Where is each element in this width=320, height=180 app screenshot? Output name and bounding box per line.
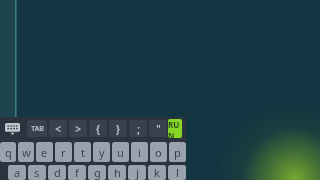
button[interactable]: s bbox=[28, 165, 46, 180]
staticText: u bbox=[117, 145, 124, 160]
button[interactable]: g bbox=[88, 165, 106, 180]
staticText: w bbox=[22, 145, 31, 160]
button[interactable]: < bbox=[49, 120, 67, 137]
staticText: g bbox=[94, 165, 101, 180]
staticText: < bbox=[55, 122, 61, 136]
button[interactable]: l bbox=[168, 165, 186, 180]
button[interactable]: { bbox=[89, 120, 107, 137]
button[interactable]: r bbox=[55, 142, 72, 162]
staticText: l bbox=[176, 165, 179, 180]
staticText: k bbox=[154, 165, 160, 180]
staticText: q bbox=[5, 145, 12, 160]
button[interactable]: > bbox=[69, 120, 87, 137]
button[interactable]: u bbox=[112, 142, 129, 162]
staticText: j bbox=[136, 165, 139, 180]
staticText: o bbox=[155, 145, 162, 160]
button[interactable]: p bbox=[169, 142, 186, 162]
staticText: d bbox=[54, 165, 61, 180]
staticText: " bbox=[156, 122, 161, 136]
button[interactable]: j bbox=[128, 165, 146, 180]
button[interactable]: ; bbox=[129, 120, 147, 137]
button[interactable]: t bbox=[74, 142, 91, 162]
button[interactable]: " bbox=[149, 120, 167, 137]
staticText: f bbox=[75, 165, 79, 180]
button[interactable]: i bbox=[131, 142, 148, 162]
staticText: TAB bbox=[31, 124, 44, 134]
staticText: r bbox=[61, 145, 66, 160]
staticText: y bbox=[99, 145, 105, 160]
button[interactable]: TAB bbox=[27, 120, 47, 137]
button[interactable]: Hide keyboard bbox=[3, 120, 22, 137]
staticText: RUN bbox=[168, 119, 182, 138]
staticText: e bbox=[41, 145, 48, 160]
button[interactable]: } bbox=[109, 120, 127, 137]
button[interactable]: RUN bbox=[168, 119, 182, 138]
staticText: h bbox=[114, 165, 121, 180]
button[interactable]: q bbox=[0, 142, 16, 162]
button[interactable]: y bbox=[93, 142, 110, 162]
button[interactable]: d bbox=[48, 165, 66, 180]
button[interactable]: e bbox=[36, 142, 53, 162]
staticText: { bbox=[96, 122, 100, 136]
staticText: ; bbox=[137, 122, 140, 136]
button[interactable]: a bbox=[8, 165, 26, 180]
button[interactable]: k bbox=[148, 165, 166, 180]
staticText: > bbox=[75, 122, 81, 136]
button[interactable]: h bbox=[108, 165, 126, 180]
staticText: i bbox=[138, 145, 141, 160]
staticText: p bbox=[174, 145, 181, 160]
button[interactable]: f bbox=[68, 165, 86, 180]
staticText: a bbox=[14, 165, 21, 180]
staticText: t bbox=[81, 145, 85, 160]
button[interactable]: o bbox=[150, 142, 167, 162]
button[interactable]: w bbox=[18, 142, 34, 162]
staticText: } bbox=[116, 122, 120, 136]
staticText: s bbox=[34, 165, 40, 180]
